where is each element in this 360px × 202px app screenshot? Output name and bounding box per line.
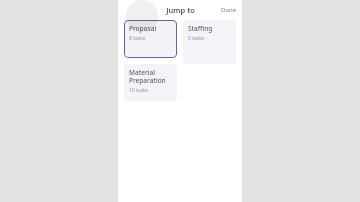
staticText: Material Preparation bbox=[129, 68, 166, 85]
staticText: Staffing bbox=[188, 24, 213, 33]
staticText: 5 tasks bbox=[188, 35, 205, 42]
staticText: 8 tasks bbox=[129, 35, 146, 42]
staticText: 10 tasks bbox=[129, 87, 149, 94]
button[interactable]: Done bbox=[216, 3, 242, 17]
button[interactable]: Material Preparation bbox=[124, 64, 177, 101]
button[interactable]: Staffing bbox=[183, 20, 236, 64]
staticText: Done bbox=[221, 6, 237, 14]
staticText: Proposal bbox=[129, 24, 157, 33]
button[interactable]: Proposal bbox=[124, 20, 177, 58]
staticText: Jump to bbox=[166, 5, 195, 15]
